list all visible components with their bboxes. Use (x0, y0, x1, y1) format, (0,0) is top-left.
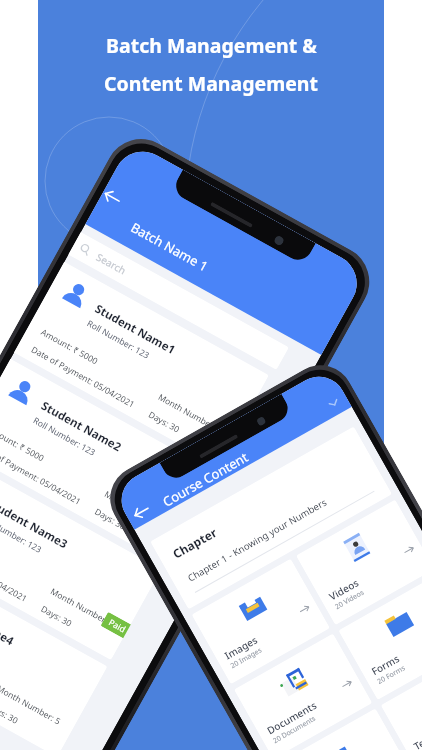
button[interactable]: Student Name2 (0, 359, 215, 563)
button[interactable]: Tests (381, 649, 422, 750)
staticText: Date of Payment: 05/04/2021 (0, 538, 30, 605)
button[interactable]: Videos (296, 499, 422, 625)
button[interactable]: Student Name4 (0, 553, 108, 750)
staticText: Roll Number: 123 (85, 317, 152, 362)
button[interactable]: Documents (234, 633, 372, 750)
button[interactable]: Expand (324, 394, 343, 413)
staticText: Tests (411, 729, 422, 750)
staticText: Videos (326, 575, 361, 603)
staticText: Date of Payment: 05/04/2021 (29, 344, 137, 411)
button[interactable]: Back (99, 184, 125, 210)
staticText: Search (94, 250, 129, 278)
staticText: Forms (369, 651, 402, 678)
staticText: Chapter 1 - Knowing your Numbers (185, 495, 329, 585)
button[interactable]: Notes (276, 708, 415, 750)
staticText: 20 Videos (333, 588, 366, 612)
button[interactable]: Student Name3 (0, 456, 161, 660)
button[interactable]: Forms (338, 574, 422, 700)
staticText: Days: 30 (0, 700, 20, 727)
staticText: Days: 30 (146, 409, 182, 436)
staticText: Student Name1 (92, 301, 179, 358)
staticText: Batch Name 1 (128, 218, 212, 276)
button[interactable]: Student Name1 (14, 262, 269, 466)
staticText: Student Name2 (38, 398, 125, 455)
staticText: Documents (264, 698, 319, 737)
button[interactable]: Chapter (150, 426, 392, 609)
staticText: Month Number: 3 (156, 391, 225, 436)
staticText: Month Number: 4 (48, 585, 117, 631)
button[interactable]: Back (129, 500, 154, 524)
button[interactable]: Search (68, 232, 289, 370)
staticText: Amount: ₹ 5000 (39, 326, 101, 368)
staticText: Date of Payment: 05/04/2021 (0, 441, 83, 508)
staticText: Roll Number: 123 (0, 511, 44, 556)
staticText: Month Number: 5 (0, 682, 63, 728)
staticText: Days: 30 (39, 603, 74, 630)
staticText: Batch Management & (106, 32, 317, 59)
staticText: Paid (107, 616, 128, 636)
staticText: 20 Forms (376, 663, 407, 687)
staticText: 20 Documents (271, 714, 318, 746)
staticText: Student Name3 (0, 495, 71, 552)
staticText: Course Content (159, 448, 252, 511)
staticText: Amount: ₹ 5000 (0, 423, 47, 465)
staticText: Days: 30 (92, 506, 128, 533)
staticText: Chapter (170, 524, 220, 562)
staticText: Roll Number: 123 (31, 414, 98, 459)
staticText: Student Name4 (0, 592, 17, 650)
staticText: Month Number: 4 (102, 488, 171, 534)
staticText: 20 Tests (418, 740, 422, 750)
staticText: Images (222, 632, 260, 662)
staticText: Content Management (104, 70, 318, 97)
staticText: 20 Images (229, 645, 264, 671)
button[interactable]: Images (191, 558, 330, 684)
